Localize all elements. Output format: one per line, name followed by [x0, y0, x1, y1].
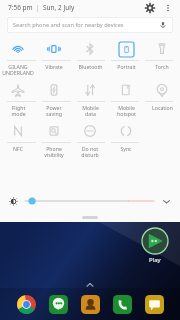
button[interactable]: More options [163, 3, 173, 13]
button[interactable]: Location [144, 79, 180, 101]
other: Location [155, 83, 169, 97]
button[interactable]: Bluetooth [72, 38, 108, 60]
other: Play [142, 228, 168, 254]
other: Bluetooth [83, 42, 97, 56]
button[interactable]: Flight mode [0, 79, 36, 101]
staticText: Vibrate [45, 63, 63, 70]
staticText: Torch [155, 63, 169, 70]
other: Brightness [9, 197, 18, 206]
button[interactable]: Contacts [78, 292, 102, 316]
staticText: Location [152, 104, 173, 111]
other: Torch [155, 42, 169, 56]
button[interactable]: Do not disturb [72, 120, 108, 142]
staticText: Sync [120, 145, 132, 152]
button[interactable]: Phone [110, 292, 134, 316]
staticText: Power saving [46, 104, 62, 118]
button[interactable]: Mobile hotspot [108, 79, 144, 101]
button[interactable]: Sync [108, 120, 144, 142]
other: Mobile hotspot [119, 83, 133, 97]
other: Vibrate [47, 42, 61, 56]
button[interactable]: GILANG UNDERLAND [0, 38, 36, 60]
button[interactable]: Play [142, 228, 168, 264]
button[interactable]: Open app drawer [85, 280, 95, 290]
button[interactable]: Line [46, 292, 70, 316]
button[interactable]: Torch [144, 38, 180, 60]
staticText: Mobile data [82, 104, 99, 118]
other: Mobile data [83, 83, 97, 97]
staticText: GILANG UNDERLAND [2, 63, 34, 77]
staticText: Bluetooth [78, 63, 103, 70]
staticText: Mobile hotspot [117, 104, 136, 118]
other: Do not disturb [83, 124, 97, 138]
button[interactable] [25, 195, 154, 207]
button[interactable]: Search phone and scan for nearby devices [7, 17, 173, 33]
staticText: Play [149, 256, 161, 264]
button[interactable]: Messages [142, 292, 166, 316]
button[interactable]: Power saving [36, 79, 72, 101]
staticText: Portrait [117, 63, 136, 70]
staticText: Sun, 2 July [43, 3, 75, 12]
button[interactable]: Expand brightness [162, 197, 171, 206]
other: Power saving [47, 83, 61, 97]
other: Voice search [159, 21, 167, 29]
button[interactable]: Portrait [108, 38, 144, 60]
staticText: Flight mode [11, 104, 26, 118]
staticText: Search phone and scan for nearby devices [13, 21, 124, 29]
staticText: NFC [13, 145, 23, 152]
button[interactable]: Phone visibility [36, 120, 72, 142]
other: Flight mode [11, 83, 25, 97]
other: GILANG UNDERLAND [11, 42, 25, 56]
button[interactable]: Vibrate [36, 38, 72, 60]
other: Phone visibility [47, 124, 61, 138]
other: Sync [119, 124, 133, 138]
button[interactable]: Settings [144, 2, 156, 14]
other: NFC [11, 124, 25, 138]
staticText: Do not disturb [81, 145, 99, 159]
button[interactable]: Mobile data [72, 79, 108, 101]
button[interactable]: NFC [0, 120, 36, 142]
staticText: | [36, 3, 40, 12]
staticText: 7:56 pm [8, 3, 33, 12]
staticText: Phone visibility [44, 145, 64, 159]
button[interactable]: Chrome [14, 292, 38, 316]
other: Portrait [119, 42, 134, 57]
